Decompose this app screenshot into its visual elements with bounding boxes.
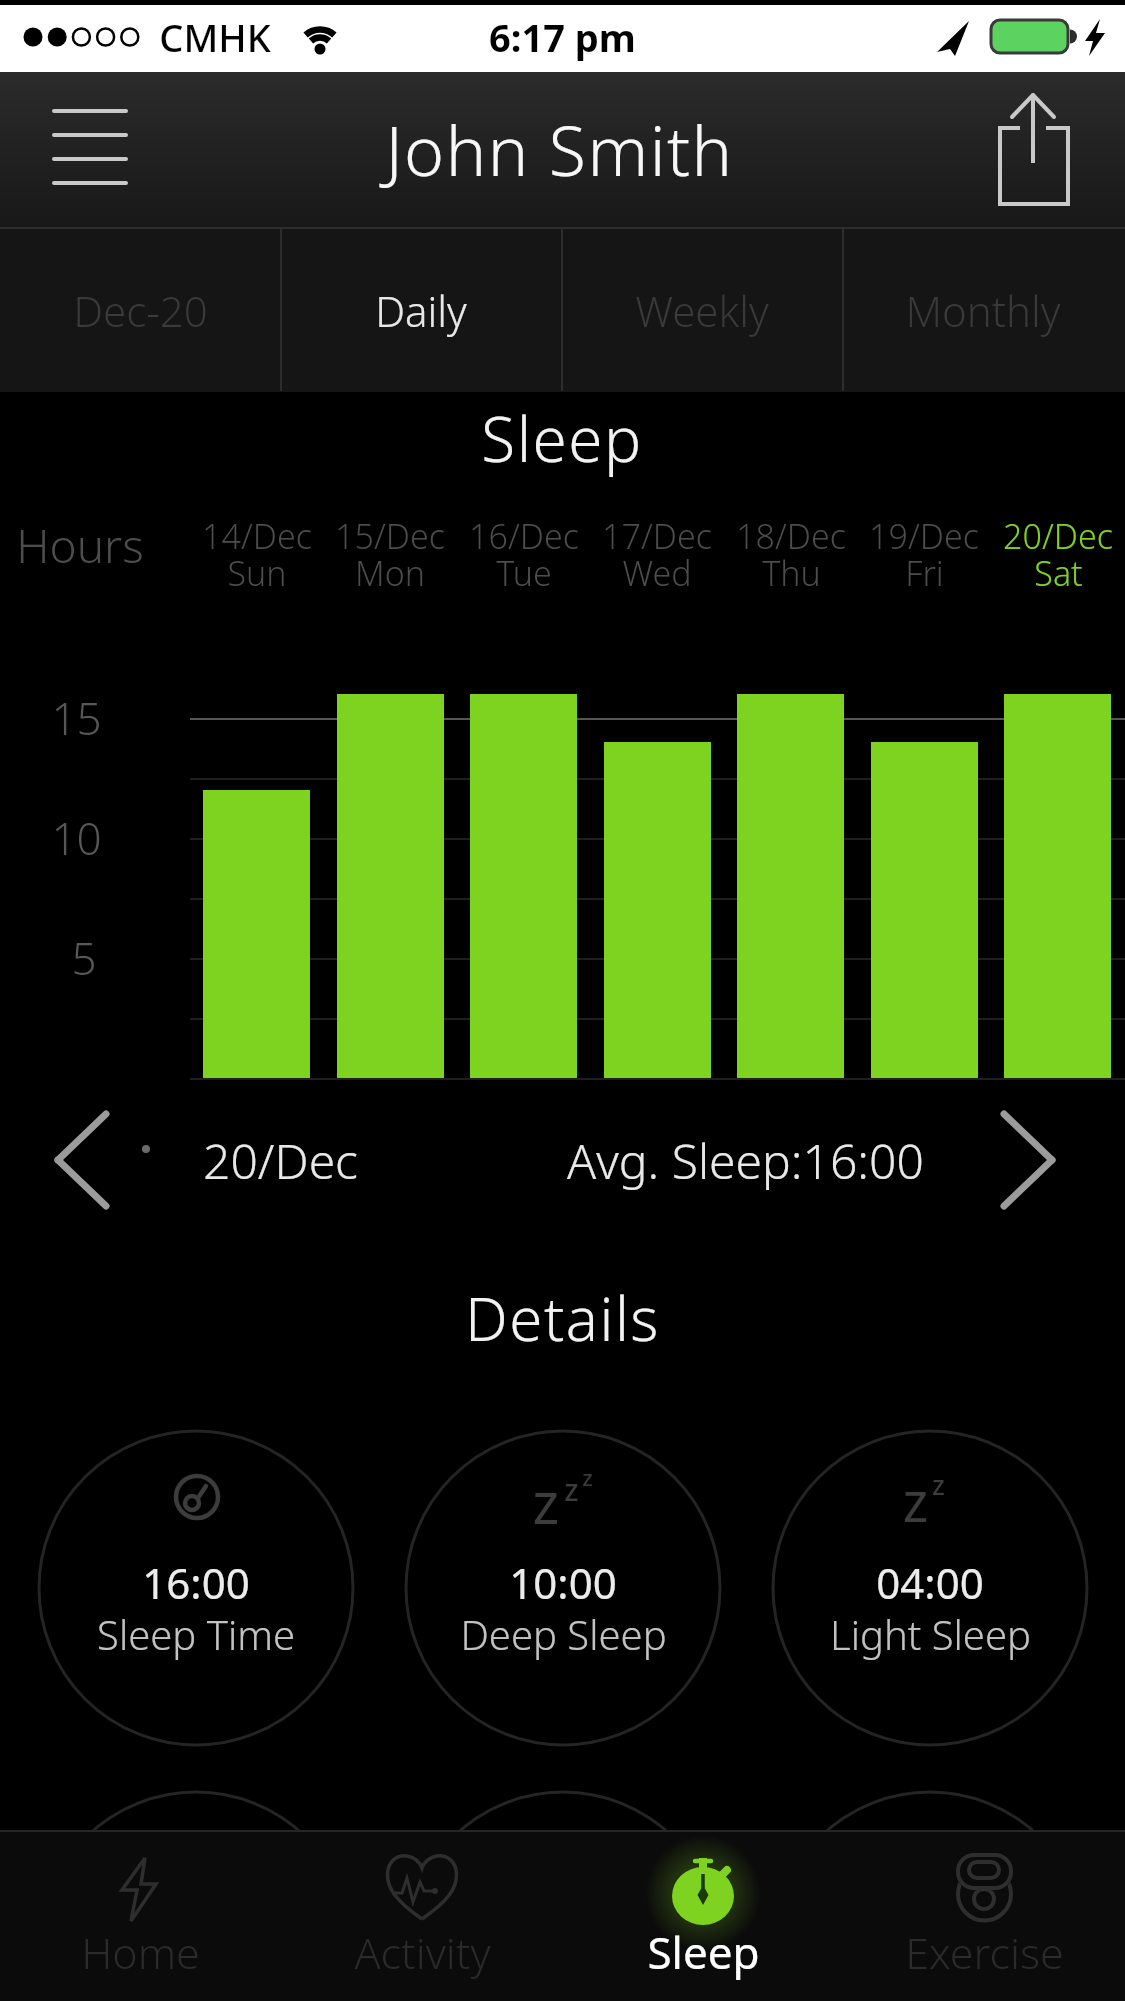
staticText: Light Sleep [830, 1607, 1031, 1661]
staticText: Weekly [635, 282, 769, 339]
staticText: Mon [355, 550, 425, 596]
staticText: 10 [51, 808, 102, 868]
staticText: 15 [51, 688, 102, 748]
staticText: Sleep Time [97, 1607, 295, 1661]
staticText: 17/Dec [602, 513, 712, 559]
staticText: Details [465, 1277, 660, 1359]
staticText: 10:00 [509, 1554, 617, 1611]
staticText: CMHK [159, 11, 271, 63]
staticText: 18/Dec [736, 513, 846, 559]
staticText: Sun [227, 550, 287, 596]
staticText: Wed [622, 550, 692, 596]
staticText: 6:17 pm [489, 11, 636, 63]
staticText: Dec-20 [73, 282, 208, 339]
staticText: z [582, 1462, 593, 1492]
staticText: 16:00 [142, 1554, 250, 1611]
staticText: Sleep [481, 396, 643, 480]
staticText: Z [533, 1477, 559, 1537]
button[interactable] [995, 1100, 1085, 1220]
staticText: 15/Dec [335, 513, 445, 559]
staticText: 16/Dec [469, 513, 579, 559]
staticText: Sleep [647, 1922, 760, 1982]
staticText: 19/Dec [869, 513, 979, 559]
button[interactable] [562, 1832, 843, 2001]
staticText: Hours [16, 514, 144, 577]
staticText: Thu [762, 550, 821, 596]
button[interactable] [35, 85, 145, 200]
staticText: Activity [354, 1923, 491, 1982]
button[interactable] [843, 1832, 1124, 2001]
staticText: 14/Dec [202, 513, 312, 559]
staticText: Daily [375, 282, 467, 339]
button[interactable] [281, 1832, 562, 2001]
staticText: Fri [905, 550, 944, 596]
button[interactable] [40, 1100, 130, 1220]
button[interactable] [843, 229, 1124, 391]
button[interactable] [0, 229, 281, 391]
staticText: 20/Dec [1003, 513, 1113, 559]
button[interactable] [0, 1832, 281, 2001]
staticText: Exercise [905, 1923, 1064, 1982]
staticText: 04:00 [876, 1554, 984, 1611]
staticText: z [932, 1466, 945, 1503]
button[interactable] [980, 80, 1085, 215]
button[interactable] [281, 229, 562, 391]
staticText: 20/Dec [203, 1128, 358, 1193]
staticText: Sat [1034, 550, 1083, 596]
button[interactable] [562, 229, 843, 391]
staticText: Z [903, 1477, 928, 1534]
staticText: Home [81, 1923, 200, 1982]
staticText: Avg. Sleep:16:00 [567, 1128, 924, 1193]
staticText: John Smith [385, 103, 734, 196]
staticText: 5 [71, 928, 97, 988]
staticText: Tue [496, 550, 552, 596]
staticText: z [564, 1469, 579, 1510]
staticText: Deep Sleep [460, 1607, 667, 1661]
staticText: Monthly [905, 282, 1061, 339]
